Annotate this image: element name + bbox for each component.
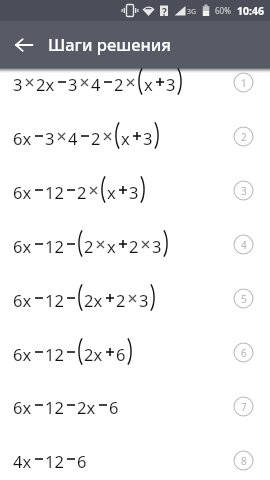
- button[interactable]: Back: [0, 21, 47, 67]
- staticText: 8: [241, 454, 247, 468]
- staticText: x: [107, 235, 116, 257]
- staticText: 2: [241, 130, 247, 144]
- button[interactable]: 6x: [0, 218, 270, 272]
- staticText: 6x: [13, 181, 32, 203]
- staticText: 3: [45, 127, 55, 149]
- staticText: 6x: [13, 127, 32, 149]
- staticText: 6x: [13, 235, 32, 257]
- staticText: 4: [241, 238, 247, 252]
- staticText: 2x: [84, 289, 103, 311]
- staticText: 3: [152, 235, 162, 257]
- staticText: 2x: [84, 343, 103, 365]
- staticText: 10:46: [237, 4, 264, 18]
- staticText: x: [121, 127, 130, 149]
- staticText: 4x: [13, 450, 32, 472]
- button[interactable]: 6x: [0, 380, 270, 434]
- staticText: x: [107, 181, 116, 203]
- staticText: 6x: [13, 343, 32, 365]
- staticText: 6: [241, 346, 247, 360]
- button[interactable]: 6x: [0, 326, 270, 380]
- staticText: 6x: [13, 396, 32, 418]
- staticText: 1: [241, 76, 247, 90]
- staticText: 3: [139, 289, 149, 311]
- staticText: 2: [114, 73, 124, 95]
- staticText: 6: [116, 343, 126, 365]
- staticText: 6: [109, 396, 119, 418]
- staticText: 3: [129, 181, 139, 203]
- staticText: 2: [91, 127, 101, 149]
- button[interactable]: 3: [0, 56, 270, 110]
- staticText: x: [144, 73, 153, 95]
- staticText: 3G: [187, 7, 197, 17]
- button[interactable]: 6x: [0, 110, 270, 164]
- button[interactable]: 4x: [0, 434, 270, 480]
- staticText: 3: [68, 73, 78, 95]
- staticText: 4: [91, 73, 101, 95]
- staticText: 12: [45, 235, 64, 257]
- staticText: Шаги решения: [48, 33, 172, 55]
- staticText: ?: [162, 5, 167, 17]
- button[interactable]: 6x: [0, 272, 270, 326]
- staticText: 6x: [13, 289, 32, 311]
- staticText: 2: [84, 235, 94, 257]
- staticText: 3: [166, 73, 176, 95]
- staticText: 7: [241, 400, 247, 414]
- staticText: 12: [45, 396, 64, 418]
- staticText: 6: [77, 450, 87, 472]
- staticText: 12: [45, 450, 64, 472]
- staticText: 3: [143, 127, 153, 149]
- staticText: 2: [116, 289, 126, 311]
- staticText: 60%: [215, 5, 231, 16]
- staticText: 3: [241, 184, 247, 198]
- staticText: 12: [45, 289, 64, 311]
- staticText: 2x: [36, 73, 55, 95]
- button[interactable]: 6x: [0, 164, 270, 218]
- staticText: 2x: [77, 396, 96, 418]
- staticText: 12: [45, 181, 64, 203]
- staticText: 5: [241, 292, 247, 306]
- staticText: 2: [129, 235, 139, 257]
- staticText: 3: [13, 73, 23, 95]
- staticText: 12: [45, 343, 64, 365]
- staticText: 4: [68, 127, 78, 149]
- staticText: 2: [77, 181, 87, 203]
